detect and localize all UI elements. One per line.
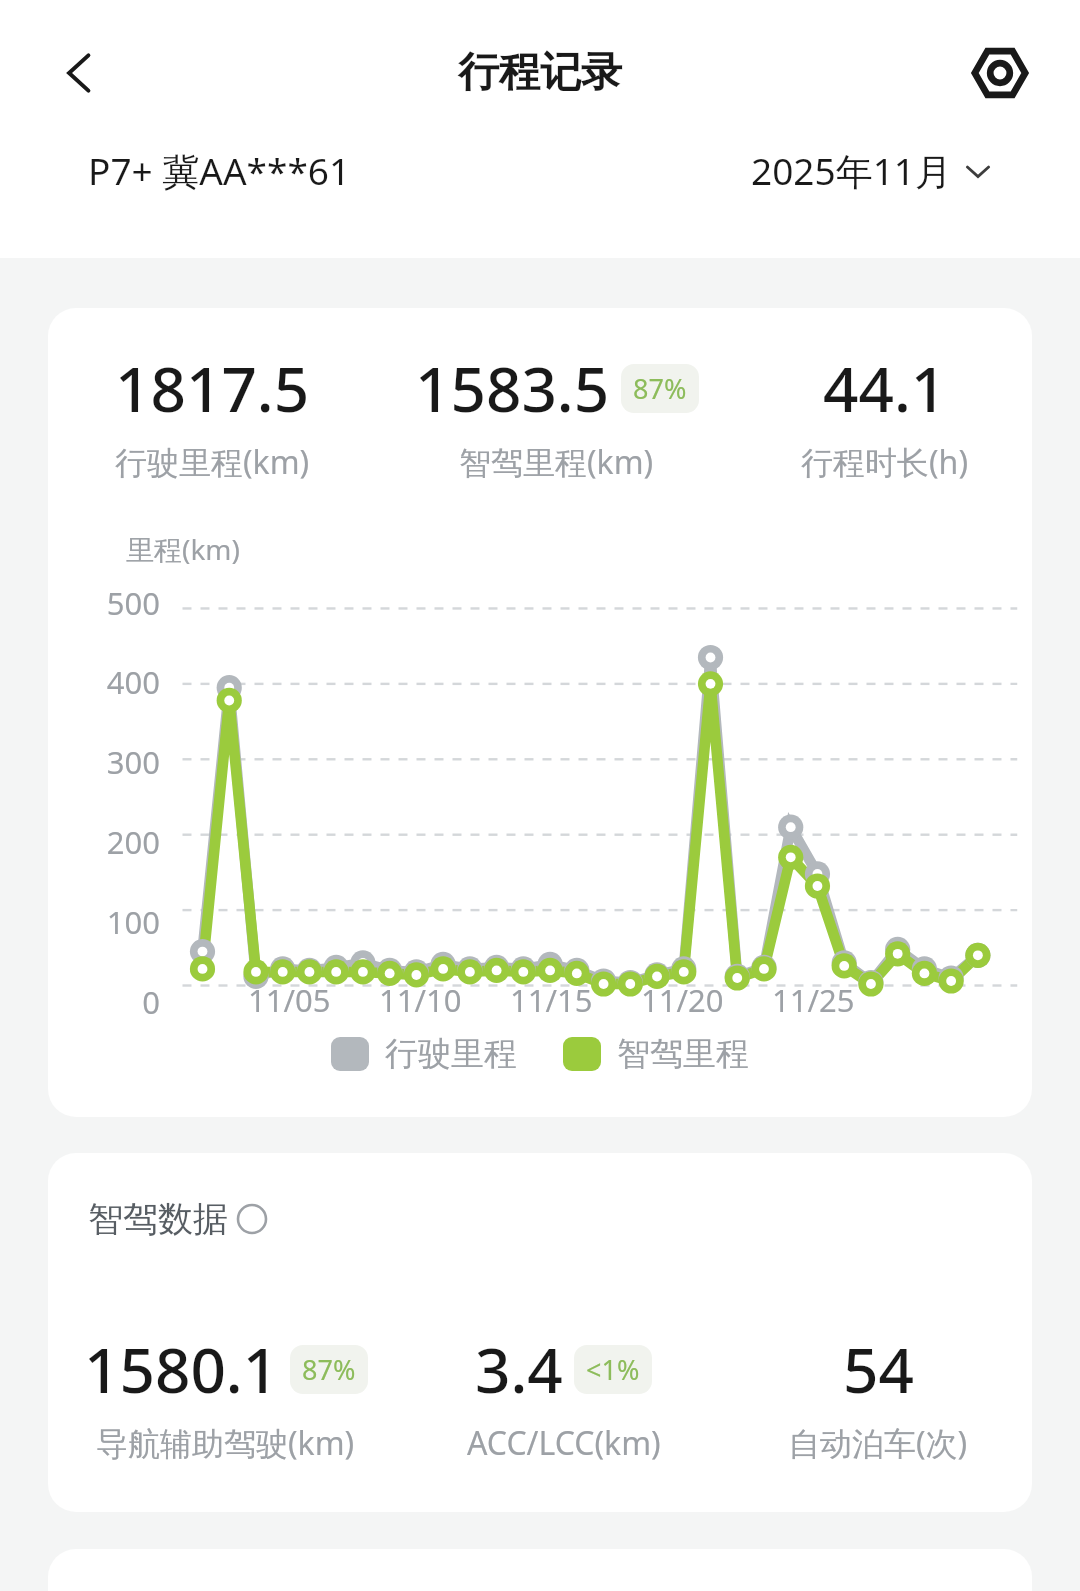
staticText: P7+ 冀AA***61 bbox=[88, 145, 351, 196]
staticText: 智驾里程 bbox=[617, 1033, 749, 1075]
staticText: 3.4 bbox=[475, 1327, 563, 1411]
staticText: 自动泊车(次) bbox=[788, 1421, 968, 1465]
staticText: 智驾数据 bbox=[88, 1197, 228, 1241]
button[interactable]: 智驾里程 bbox=[563, 1033, 749, 1075]
staticText: 1817.5 bbox=[115, 346, 310, 430]
staticText: 1580.1 bbox=[84, 1327, 279, 1411]
button[interactable]: 1580.1 bbox=[48, 1327, 403, 1465]
staticText: 11/10 bbox=[379, 979, 462, 1021]
button[interactable]: 1583.5 bbox=[376, 346, 737, 484]
staticText: 行程记录 bbox=[458, 47, 622, 99]
staticText: 11/15 bbox=[510, 979, 593, 1021]
staticText: 11/05 bbox=[248, 979, 331, 1021]
staticText: 87% bbox=[633, 370, 687, 407]
staticText: 0 bbox=[142, 981, 160, 1023]
staticText: 87% bbox=[302, 1351, 356, 1388]
button[interactable]: 行驶里程 bbox=[331, 1033, 517, 1075]
staticText: ACC/LCC(km) bbox=[467, 1421, 661, 1465]
button[interactable]: 3.4 bbox=[403, 1327, 724, 1465]
staticText: <1% bbox=[586, 1351, 640, 1388]
button[interactable]: 54 bbox=[724, 1327, 1032, 1465]
staticText: 54 bbox=[843, 1327, 914, 1411]
staticText: 200 bbox=[106, 821, 160, 863]
staticText: 行驶里程(km) bbox=[115, 440, 310, 484]
staticText: 智驾里程(km) bbox=[459, 440, 654, 484]
staticText: 44.1 bbox=[823, 346, 947, 430]
staticText: 1583.5 bbox=[415, 346, 610, 430]
button[interactable]: 设置 bbox=[960, 33, 1040, 113]
staticText: 100 bbox=[106, 901, 160, 943]
other: 说明 bbox=[236, 1203, 268, 1235]
button[interactable]: 智驾数据 bbox=[88, 1197, 268, 1241]
button[interactable]: 44.1 bbox=[737, 346, 1032, 484]
staticText: 行程时长(h) bbox=[801, 440, 968, 484]
staticText: 300 bbox=[106, 741, 160, 783]
staticText: 导航辅助驾驶(km) bbox=[96, 1421, 355, 1465]
staticText: 11/25 bbox=[772, 979, 855, 1021]
button[interactable]: 1817.5 bbox=[48, 346, 376, 484]
staticText: 里程(km) bbox=[126, 530, 240, 568]
staticText: 2025年11月 bbox=[751, 145, 952, 196]
button[interactable]: 2025年11月 bbox=[751, 145, 992, 196]
staticText: 400 bbox=[106, 661, 160, 703]
staticText: 11/20 bbox=[641, 979, 724, 1021]
button[interactable]: 返回 bbox=[40, 33, 120, 113]
staticText: 500 bbox=[106, 582, 160, 624]
staticText: 行驶里程 bbox=[385, 1033, 517, 1075]
